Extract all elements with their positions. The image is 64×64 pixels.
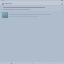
button[interactable]: Album artwork bbox=[2, 12, 8, 18]
staticText: 9:41 bbox=[2, 0, 4, 1]
button[interactable] bbox=[2, 6, 62, 11]
button[interactable] bbox=[9, 12, 62, 18]
button[interactable]: Search bbox=[60, 2, 63, 5]
button[interactable]: Menu bbox=[1, 2, 4, 5]
button[interactable]: Home bbox=[0, 62, 22, 64]
staticText: Library bbox=[5, 2, 12, 5]
